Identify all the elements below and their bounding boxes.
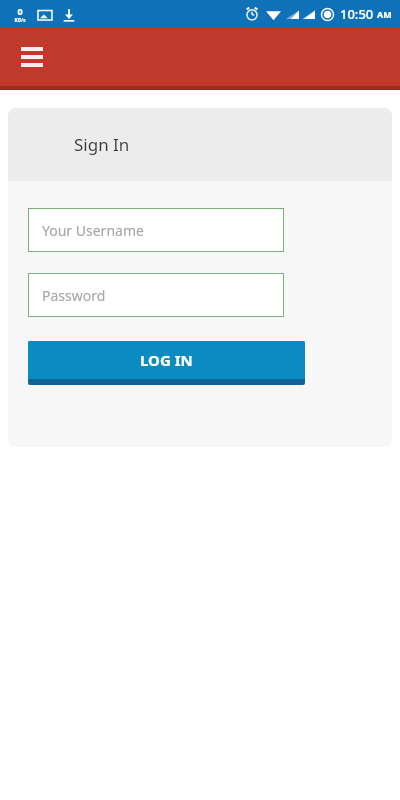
- button[interactable]: Your Username: [28, 208, 284, 252]
- staticText: 0: [17, 5, 23, 17]
- staticText: Your Username: [42, 221, 144, 240]
- button[interactable]: Password: [28, 273, 284, 317]
- staticText: LOG IN: [140, 350, 193, 370]
- staticText: KB/s: [14, 17, 26, 24]
- staticText: AM: [377, 8, 392, 20]
- staticText: 10:50: [340, 5, 374, 23]
- staticText: Sign In: [74, 133, 130, 156]
- button[interactable]: LOG IN: [28, 341, 305, 385]
- staticText: Password: [42, 286, 106, 305]
- button[interactable]: Open navigation menu: [14, 39, 50, 75]
